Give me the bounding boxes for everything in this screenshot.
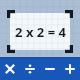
button[interactable]: Add (60, 57, 80, 80)
staticText: 2 x 2 = 4 (15, 23, 66, 41)
button[interactable]: 2 x 2 = 4 (10, 13, 70, 50)
button[interactable]: Multiply (0, 57, 20, 80)
button[interactable]: Subtract (40, 57, 60, 80)
button[interactable]: Divide (20, 57, 40, 80)
